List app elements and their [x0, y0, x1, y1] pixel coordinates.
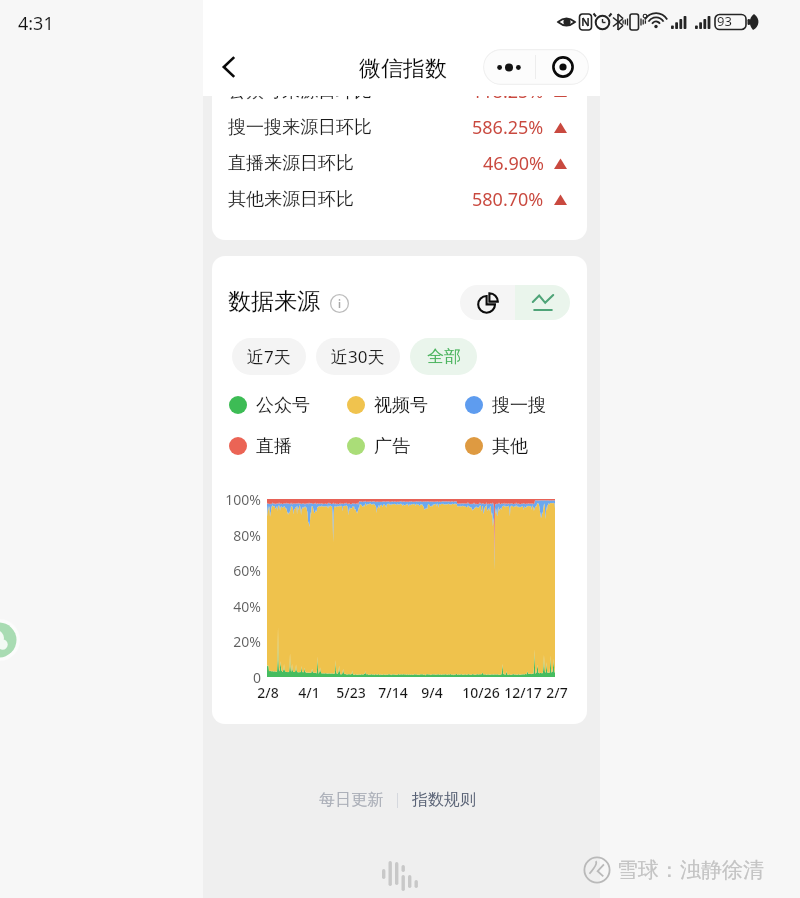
button[interactable]: 其他 [465, 434, 528, 458]
staticText: 5/23 [321, 683, 381, 702]
button[interactable]: 近30天 [316, 338, 400, 375]
staticText: 公众号 [256, 394, 310, 417]
staticText: 其他来源日环比 [228, 188, 354, 211]
staticText: 10/26 [451, 683, 511, 702]
staticText: 广告 [374, 435, 410, 458]
button[interactable]: 公众号来源日环比 [228, 73, 567, 109]
staticText: 2/7 [527, 683, 587, 702]
button[interactable]: 直播 [229, 434, 292, 458]
staticText: 微信指数 [359, 55, 447, 83]
staticText: 搜一搜 [492, 394, 546, 417]
other: Voice [382, 857, 420, 891]
button[interactable]: Info [330, 294, 349, 313]
staticText: 数据来源 [228, 287, 320, 316]
button[interactable]: 广告 [347, 434, 410, 458]
staticText: 每日更新 [319, 790, 383, 810]
staticText: 20% [212, 632, 261, 651]
button[interactable]: 搜一搜 [465, 393, 546, 417]
staticText: 指数规则 [412, 790, 476, 810]
button[interactable]: 指数规则 [412, 790, 476, 810]
staticText: 4:31 [18, 11, 54, 36]
button[interactable]: Pie chart view [460, 285, 515, 320]
staticText: 80% [212, 526, 261, 545]
staticText: 12/17 [493, 683, 553, 702]
button[interactable]: More [483, 49, 589, 85]
staticText: 近30天 [331, 345, 385, 368]
staticText: 586.25% [472, 115, 544, 140]
staticText: 直播来源日环比 [228, 152, 354, 175]
button[interactable]: 视频号 [347, 393, 428, 417]
staticText: 60% [212, 561, 261, 580]
staticText: 全部 [427, 346, 461, 367]
button[interactable]: Back [208, 46, 250, 88]
other: Close [536, 49, 589, 85]
button[interactable]: 公众号 [229, 393, 310, 417]
button[interactable]: 直播来源日环比 [228, 145, 567, 181]
staticText: 搜一搜来源日环比 [228, 116, 372, 139]
staticText: 公众号来源日环比 [228, 80, 372, 103]
staticText: 9/4 [402, 683, 462, 702]
staticText: 580.70% [472, 187, 544, 212]
staticText: 40% [212, 597, 261, 616]
staticText: 118.25% [472, 79, 544, 104]
staticText: 直播 [256, 435, 292, 458]
button[interactable]: 每日更新 [319, 790, 383, 810]
staticText: 近7天 [247, 345, 291, 368]
button[interactable]: 搜一搜来源日环比 [228, 109, 567, 145]
staticText: 视频号 [374, 394, 428, 417]
staticText: 雪球：浊静徐清 [617, 857, 764, 883]
button[interactable]: 近7天 [232, 338, 306, 375]
other: WeChat floating window [0, 615, 24, 665]
other: More [483, 49, 535, 85]
button[interactable]: 全部 [410, 338, 477, 375]
staticText: 93 [717, 12, 732, 30]
staticText: 2/8 [238, 683, 298, 702]
button[interactable]: 其他来源日环比 [228, 181, 567, 217]
staticText: 4/1 [279, 683, 339, 702]
button[interactable]: Line chart view [515, 285, 570, 320]
staticText: 0 [212, 668, 261, 687]
staticText: 7/14 [363, 683, 423, 702]
staticText: 100% [212, 490, 261, 509]
staticText: 46.90% [483, 151, 544, 176]
staticText: 其他 [492, 435, 528, 458]
